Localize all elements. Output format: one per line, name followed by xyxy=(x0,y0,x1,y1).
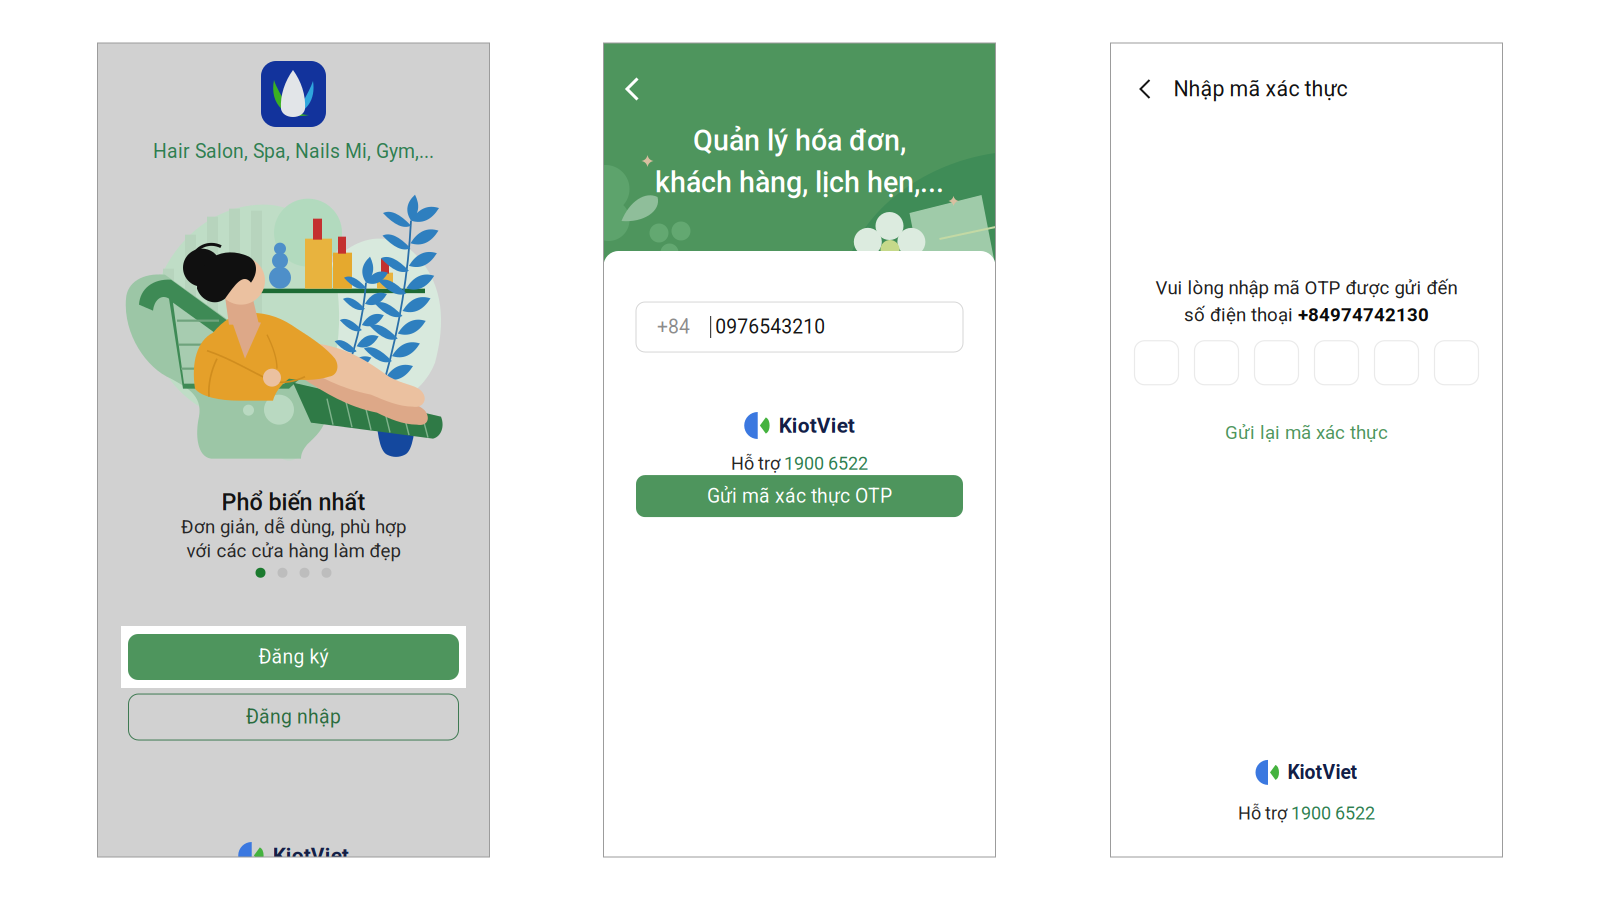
staticText: Đăng nhập xyxy=(246,706,341,728)
staticText: Hair Salon, Spa, Nails Mi, Gym,... xyxy=(153,140,434,163)
staticText: 0976543210 xyxy=(715,316,825,338)
staticText: Quản lý hóa đơn, xyxy=(693,124,906,158)
staticText: KiotViet xyxy=(273,843,349,868)
staticText: KiotViet xyxy=(779,413,855,438)
staticText: Nhập mã xác thực xyxy=(1173,76,1347,101)
staticText: KiotViet xyxy=(1287,761,1357,784)
staticText: với các cửa hàng làm đẹp xyxy=(186,540,400,562)
staticText: Phổ biến nhất xyxy=(221,489,365,516)
staticText: Gửi lại mã xác thực xyxy=(1225,422,1388,444)
staticText: số điện thoại xyxy=(1184,304,1298,326)
staticText: +84974742130 xyxy=(1298,304,1429,326)
staticText: Đơn giản, dễ dùng, phù hợp xyxy=(181,516,406,538)
button[interactable]: Đăng ký xyxy=(121,626,466,688)
staticText: +84 xyxy=(657,316,690,338)
button[interactable]: Back xyxy=(1131,71,1159,107)
staticText: 1900 6522 xyxy=(1291,803,1375,824)
staticText: Gửi mã xác thực OTP xyxy=(707,485,892,507)
staticText: khách hàng, lịch hẹn,... xyxy=(655,166,944,199)
button[interactable]: Đăng nhập xyxy=(128,694,458,740)
button[interactable]: Gửi mã xác thực OTP xyxy=(636,475,963,517)
button[interactable]: Back xyxy=(616,68,649,110)
staticText: 1900 6522 xyxy=(784,453,868,474)
button[interactable]: Gửi lại mã xác thực xyxy=(1217,414,1396,452)
staticText: Vui lòng nhập mã OTP được gửi đến xyxy=(1155,277,1457,299)
staticText: Hỗ trợ xyxy=(731,453,784,474)
staticText: Hỗ trợ xyxy=(1238,803,1291,824)
staticText: Đăng ký xyxy=(258,646,328,668)
